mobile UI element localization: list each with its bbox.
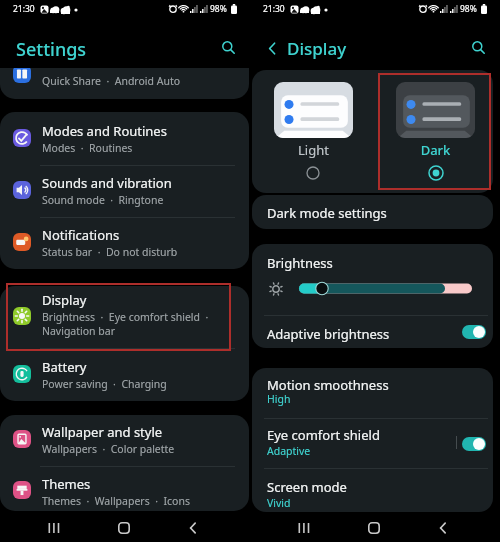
button[interactable]: Quick Share · Android Auto (0, 68, 249, 99)
button[interactable]: Modes and Routines (0, 112, 249, 164)
button[interactable]: Back (430, 513, 456, 542)
staticText: 21:30 (13, 3, 35, 15)
button[interactable]: Display (0, 283, 249, 347)
button[interactable]: Light mode (303, 163, 323, 183)
staticText: Themes · Wallpapers · Icons (42, 494, 190, 508)
staticText: Dark mode settings (267, 204, 387, 222)
staticText: Wallpaper and style (42, 423, 163, 441)
button[interactable] (252, 195, 493, 229)
staticText: Quick Share · Android Auto (42, 74, 181, 88)
staticText: Vivid (267, 496, 291, 510)
staticText: Adaptive (267, 444, 311, 458)
staticText: Dark (396, 141, 475, 159)
staticText: Motion smoothness (267, 376, 389, 394)
staticText: Navigation bar (42, 324, 116, 338)
staticText: Sound mode · Ringtone (42, 193, 164, 207)
staticText: Display (42, 291, 87, 309)
button[interactable]: Back (180, 513, 206, 542)
button[interactable]: Home (361, 513, 387, 542)
staticText: Themes (42, 475, 91, 493)
staticText: Eye comfort shield (267, 426, 380, 444)
staticText: Display (287, 37, 347, 60)
button[interactable]: Back (261, 37, 283, 59)
button[interactable]: Recents (40, 513, 66, 542)
staticText: Light (274, 141, 353, 159)
button[interactable] (274, 82, 353, 138)
button[interactable]: Sounds and vibration (0, 165, 249, 217)
staticText: Adaptive brightness (267, 325, 390, 343)
staticText: Brightness · Eye comfort shield · (42, 310, 209, 324)
staticText: Sounds and vibration (42, 174, 172, 192)
staticText: Settings (16, 37, 87, 62)
staticText: High (267, 392, 291, 406)
button[interactable]: Search (217, 36, 239, 58)
button[interactable] (252, 316, 493, 348)
button[interactable]: Recents (290, 513, 316, 542)
staticText: Notifications (42, 226, 120, 244)
staticText: Brightness (267, 254, 333, 272)
button[interactable]: Adaptive brightness (462, 325, 486, 339)
staticText: 98% (210, 3, 227, 15)
staticText: Wallpapers · Color palette (42, 442, 175, 456)
button[interactable]: Battery (0, 349, 249, 399)
button[interactable]: Home (111, 513, 137, 542)
button[interactable]: Search (467, 36, 489, 58)
button[interactable]: Notifications (0, 218, 249, 266)
staticText: Status bar · Do not disturb (42, 245, 178, 259)
button[interactable]: Wallpaper and style (0, 415, 249, 465)
button[interactable] (396, 82, 475, 138)
staticText: 21:30 (263, 3, 285, 15)
staticText: Modes and Routines (42, 122, 167, 140)
button[interactable]: Brightness slider (295, 278, 477, 299)
staticText: 98% (460, 3, 477, 15)
staticText: Screen mode (267, 478, 347, 496)
button[interactable]: Themes (0, 467, 249, 512)
staticText: Battery (42, 358, 87, 376)
staticText: Modes · Routines (42, 141, 133, 155)
staticText: Power saving · Charging (42, 377, 167, 391)
button[interactable]: Eye comfort shield (462, 437, 486, 451)
button[interactable]: Dark mode (426, 163, 446, 183)
